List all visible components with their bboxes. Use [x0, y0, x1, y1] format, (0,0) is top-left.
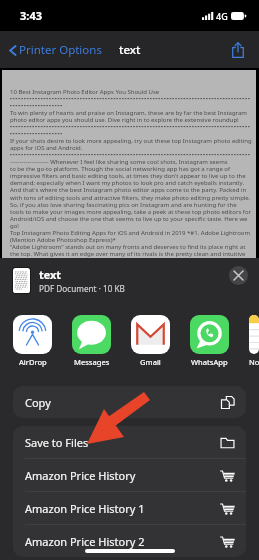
button[interactable]: AirDrop [13, 315, 52, 366]
staticText: 3:43 [20, 8, 42, 23]
staticText: with tons of editing tools and attractiv… [10, 194, 251, 202]
staticText: If your shots desire to look more appeal… [10, 137, 252, 145]
staticText: AirDrop [19, 357, 47, 366]
staticText: 10 Best Instagram Photo Editor Apps You … [10, 88, 160, 96]
button[interactable]: Amazon Price History [13, 459, 246, 491]
button[interactable]: WhatsApp [190, 315, 229, 366]
button[interactable]: Amazon Price History 1 [13, 492, 246, 524]
button[interactable]: Save to Files [13, 426, 246, 458]
staticText: Amazon Price History [25, 468, 136, 483]
staticText: Gmail [140, 357, 161, 366]
staticText: text [119, 42, 141, 58]
staticText: WhatsApp [191, 357, 228, 366]
staticText: To win plenty of hearts and praise on In… [10, 109, 247, 117]
button[interactable]: Close [229, 266, 248, 285]
staticText: Android/iOS and choose the one that seem… [10, 215, 248, 223]
staticText: Top Instagram Photo Editing Apps for iOS… [10, 229, 251, 237]
staticText: tools to make your images more appealing… [10, 208, 251, 216]
staticText: Save to Files [25, 435, 89, 450]
staticText: apps for iOS and Android. [10, 144, 83, 152]
staticText: -------------------- Whenever I feel lik… [10, 158, 228, 166]
staticText: Copy [25, 395, 51, 410]
button[interactable]: Amazon Price History 2 [13, 525, 246, 557]
staticText: text [39, 267, 61, 282]
staticText: demand; especially when I want my photos… [10, 179, 244, 187]
staticText: 4G [216, 10, 228, 22]
staticText: go! [10, 222, 19, 230]
staticText: (Mention Adobe Photoshop Express)* [10, 236, 116, 244]
staticText: photo editor apps you should use. Dive r… [10, 116, 239, 124]
button[interactable]: Messages [72, 315, 111, 366]
staticText: "Adobe Lightroom" stands out on many fro… [10, 243, 246, 251]
button[interactable]: Gmail [131, 315, 170, 366]
staticText: Amazon Price History 1 [25, 501, 145, 516]
staticText: impressive filters and basic editing too… [10, 172, 246, 180]
button[interactable]: Share [226, 38, 250, 62]
staticText: And that's where the best Instagram phot… [10, 186, 247, 194]
staticText: So, if you also love sharing fascinating… [10, 201, 237, 209]
button[interactable]: Notes [249, 315, 259, 366]
staticText: Amazon Price History 2 [25, 534, 145, 549]
staticText: the top. What gives it an edge over many… [10, 250, 246, 258]
button[interactable]: Printer Options [8, 42, 102, 58]
staticText: PDF Document · 10 KB [39, 283, 125, 294]
staticText: Notes [249, 357, 259, 366]
staticText: to be the go-to platform. Though the soc… [10, 165, 231, 173]
staticText: Printer Options [19, 42, 102, 58]
staticText: Messages [74, 357, 110, 366]
